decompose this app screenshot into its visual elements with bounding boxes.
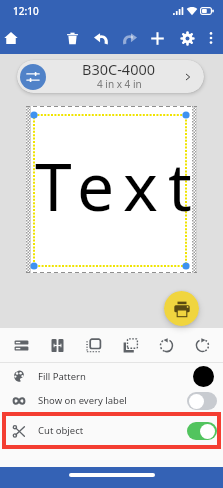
button[interactable]: B30C-4000	[17, 60, 204, 93]
button[interactable]: Rotate left	[151, 330, 181, 360]
button[interactable]: Align vertical	[42, 330, 72, 360]
staticText: Text	[35, 140, 202, 230]
button[interactable]: Add	[144, 25, 170, 51]
button[interactable]: Off	[187, 392, 217, 410]
button[interactable]: Home	[0, 25, 24, 51]
button[interactable]: Cut object	[0, 412, 223, 449]
staticText: Fill Pattern	[38, 370, 86, 383]
staticText: 4 in x 4 in	[97, 77, 142, 91]
button[interactable]: Rotate right	[187, 330, 217, 360]
button[interactable]: Redo	[117, 25, 143, 51]
staticText: Show on every label	[38, 394, 127, 407]
staticText: 12:10	[13, 4, 39, 18]
button[interactable]: Align horizontal	[6, 330, 36, 360]
staticText: B30C-4000	[82, 60, 156, 79]
button[interactable]: Duplicate	[78, 330, 108, 360]
button[interactable]: More options	[198, 25, 223, 51]
button[interactable]: On	[187, 422, 217, 440]
button[interactable]: Delete	[59, 25, 85, 51]
button[interactable]: Undo	[88, 25, 114, 51]
button[interactable]: Settings	[174, 25, 200, 51]
button[interactable]: Show on every label	[0, 389, 223, 412]
button[interactable]: Select all	[115, 330, 145, 360]
button[interactable]: Fill Pattern	[0, 363, 223, 389]
staticText: Cut object	[38, 424, 84, 437]
button[interactable]: Print	[164, 291, 199, 326]
